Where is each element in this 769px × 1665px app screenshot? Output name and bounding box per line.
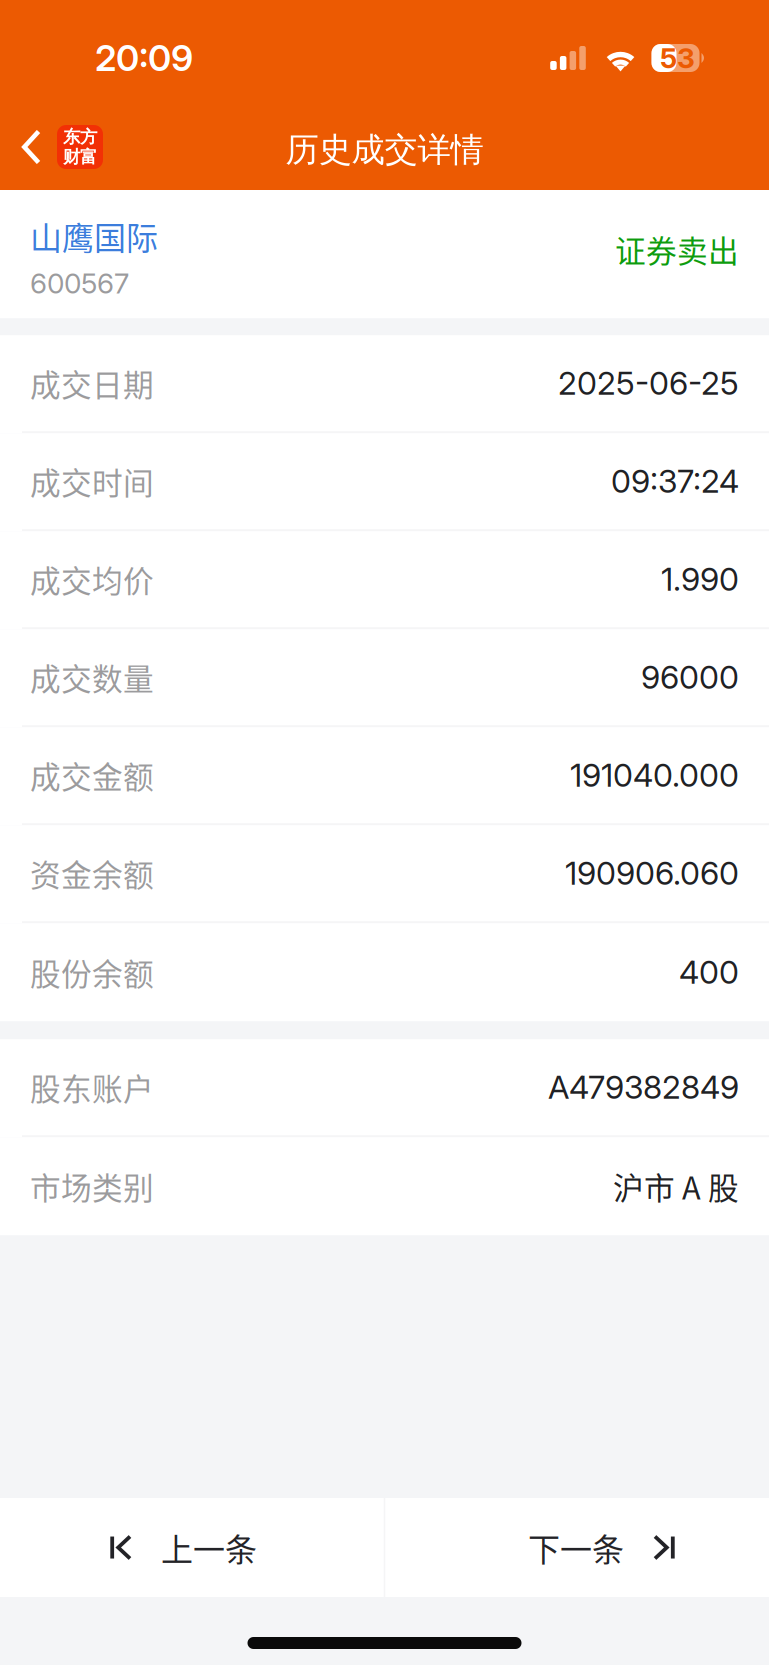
staticText: 股份余额 [30,950,154,994]
staticText: 成交金额 [30,753,154,797]
staticText: 191040.000 [570,756,739,795]
button[interactable]: 上一条 [0,1498,384,1597]
staticText: 市场类别 [30,1164,154,1208]
staticText: 1.990 [661,560,739,599]
staticText: 96000 [641,658,739,697]
staticText: 资金余额 [30,851,154,895]
staticText: 山鹰国际 [30,213,158,259]
staticText: 09:37:24 [611,462,739,501]
staticText: 成交日期 [30,361,154,405]
button[interactable]: 下一条 [385,1498,769,1597]
staticText: 上一条 [161,1524,257,1571]
button[interactable]: Back [0,119,117,175]
button[interactable]: 山鹰国际 [0,190,769,318]
staticText: 财富 [63,146,97,168]
staticText: 20:09 [95,36,193,80]
staticText: 成交均价 [30,557,154,601]
staticText: A479382849 [548,1068,739,1107]
staticText: 53 [660,41,695,75]
staticText: 沪市 A 股 [613,1164,739,1208]
staticText: 2025-06-25 [558,364,739,403]
staticText: 历史成交详情 [285,129,483,171]
staticText: 成交时间 [30,459,154,503]
staticText: 成交数量 [30,655,154,699]
staticText: 东方 [63,126,97,148]
staticText: 股东账户 [30,1065,154,1109]
staticText: 400 [679,953,739,992]
staticText: 下一条 [528,1524,624,1571]
staticText: 190906.060 [565,854,739,893]
staticText: 600567 [30,266,129,300]
staticText: 证券卖出 [615,227,739,271]
